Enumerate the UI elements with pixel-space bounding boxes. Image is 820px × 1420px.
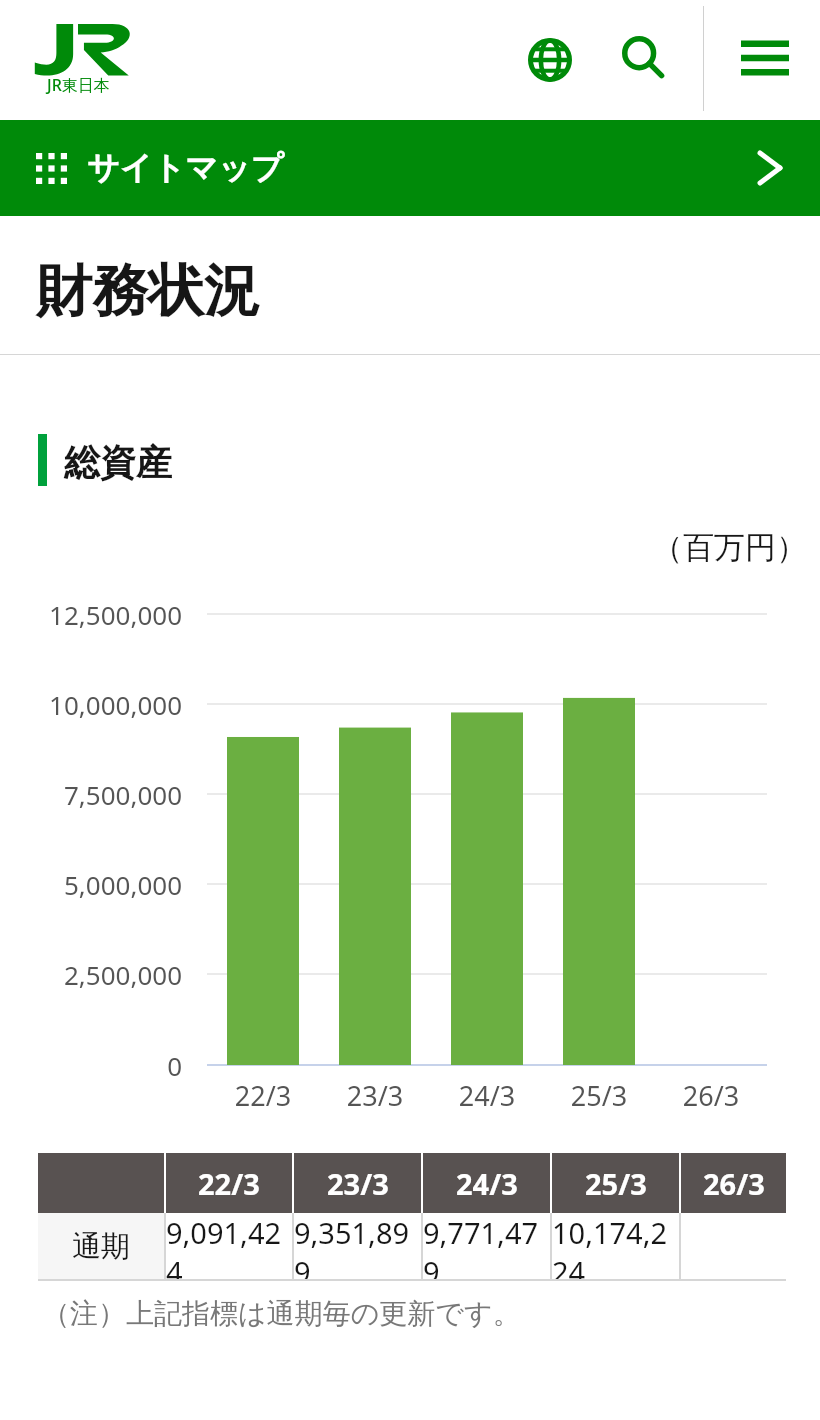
staticText: 25/3 — [543, 1077, 655, 1114]
staticText: 9,351,899 — [294, 1213, 421, 1279]
button[interactable]: サイトマップ — [0, 120, 820, 216]
staticText: 25/3 — [585, 1164, 647, 1203]
staticText: 26/3 — [703, 1164, 765, 1203]
button[interactable]: JR East home — [24, 24, 132, 98]
staticText: 財務状況 — [36, 256, 260, 327]
button[interactable]: Language — [520, 30, 580, 90]
staticText: JR東日本 — [47, 74, 110, 96]
staticText: 総資産 — [64, 440, 172, 485]
staticText: 10,000,000 — [0, 687, 182, 722]
staticText: 10,174,224 — [552, 1213, 679, 1279]
staticText: 2,500,000 — [0, 957, 182, 992]
staticText: 7,500,000 — [0, 777, 182, 812]
staticText: 22/3 — [198, 1164, 260, 1203]
staticText: （注）上記指標は通期毎の更新です。 — [42, 1296, 521, 1331]
staticText: 26/3 — [655, 1077, 767, 1114]
staticText: 0 — [0, 1048, 182, 1083]
staticText: 23/3 — [319, 1077, 431, 1114]
staticText: 5,000,000 — [0, 867, 182, 902]
staticText: （百万円） — [652, 528, 807, 567]
staticText: 23/3 — [327, 1164, 389, 1203]
staticText: 9,091,424 — [166, 1213, 292, 1279]
staticText: 24/3 — [456, 1164, 518, 1203]
button[interactable]: Menu — [733, 28, 797, 88]
staticText: サイトマップ — [87, 148, 284, 188]
staticText: 22/3 — [207, 1077, 319, 1114]
staticText: 9,771,479 — [423, 1213, 550, 1279]
button[interactable]: Search — [612, 28, 674, 90]
staticText: 24/3 — [431, 1077, 543, 1114]
staticText: 通期 — [72, 1228, 130, 1265]
staticText: 12,500,000 — [0, 597, 182, 632]
